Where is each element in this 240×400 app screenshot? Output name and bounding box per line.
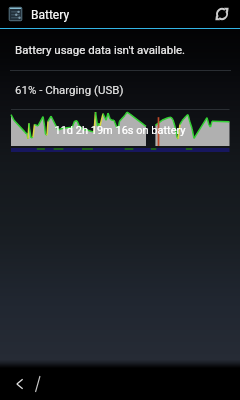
staticText: Battery usage data isn't available.	[15, 43, 186, 56]
button[interactable]: Home	[20, 368, 56, 400]
staticText: 61% - Charging (USB)	[15, 83, 124, 96]
staticText: Battery	[31, 8, 70, 22]
button[interactable]: Battery	[0, 0, 240, 28]
staticText: 11d 2h 19m 16s on battery	[54, 124, 186, 137]
button[interactable]: Back	[0, 368, 38, 400]
button[interactable]: Refresh	[207, 0, 237, 28]
